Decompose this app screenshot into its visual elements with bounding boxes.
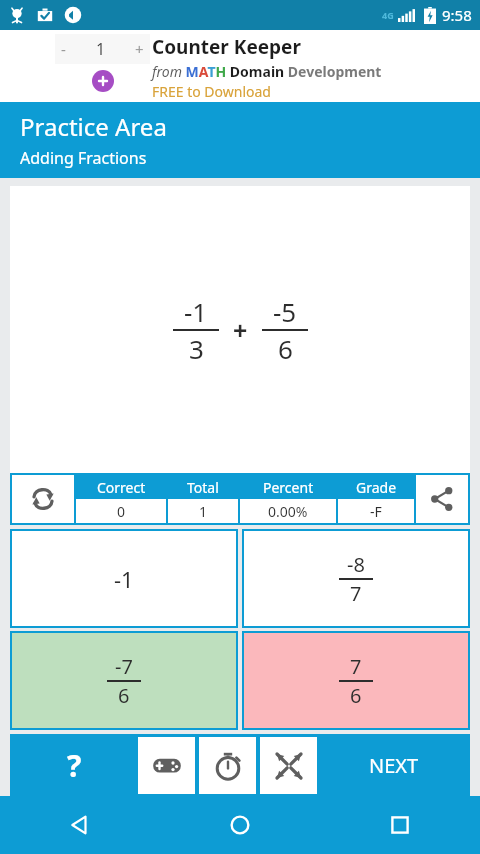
staticText: NEXT [369, 752, 419, 779]
button[interactable]: -1 [12, 531, 236, 626]
button[interactable]: Share [416, 475, 468, 523]
button[interactable]: Fullscreen [260, 737, 317, 794]
staticText: 3 [189, 331, 204, 366]
staticText: Correct [97, 478, 146, 497]
button[interactable]: Help [10, 734, 138, 796]
staticText: 9:58 [442, 5, 472, 25]
staticText: ? [67, 745, 82, 786]
staticText: 6 [278, 331, 293, 366]
staticText: - [61, 39, 66, 59]
staticText: 1 [96, 38, 106, 60]
staticText: 0 [117, 502, 126, 521]
staticText: -F [370, 502, 382, 521]
staticText: 4G [382, 9, 394, 21]
button[interactable]: -8 [244, 531, 468, 626]
staticText: Adding Fractions [20, 147, 147, 169]
button[interactable]: -7 [12, 633, 236, 728]
staticText: FREE to Download [152, 82, 271, 101]
staticText: + [135, 39, 144, 59]
staticText: Counter Keeper [152, 34, 301, 60]
staticText: -1 [184, 294, 208, 329]
button[interactable]: Games [138, 737, 195, 794]
staticText: Percent [263, 478, 314, 497]
button[interactable]: Recents [320, 796, 480, 854]
staticText: Practice Area [20, 110, 167, 143]
staticText: 0.00% [268, 502, 308, 521]
button[interactable]: NEXT [317, 734, 470, 796]
staticText: 6 [350, 682, 362, 709]
staticText: -1 [114, 564, 134, 594]
button[interactable]: Add [92, 70, 114, 92]
staticText: 6 [118, 682, 130, 709]
button[interactable]: Timer [199, 737, 256, 794]
staticText: 7 [350, 653, 362, 680]
staticText: Grade [356, 478, 397, 497]
staticText: -8 [347, 551, 365, 578]
staticText: 7 [350, 580, 362, 607]
button[interactable]: Home [160, 796, 320, 854]
staticText: Total [187, 478, 219, 497]
button[interactable]: Counter Keeper [152, 34, 480, 101]
button[interactable]: Refresh [12, 475, 74, 523]
staticText: -7 [115, 653, 133, 680]
staticText: -5 [273, 294, 297, 329]
staticText: + [233, 313, 248, 347]
staticText: 1 [199, 502, 208, 521]
button[interactable]: - [55, 34, 150, 64]
button[interactable]: 7 [244, 633, 468, 728]
staticText: from MATH Domain Development [152, 62, 382, 81]
button[interactable]: Back [0, 796, 160, 854]
